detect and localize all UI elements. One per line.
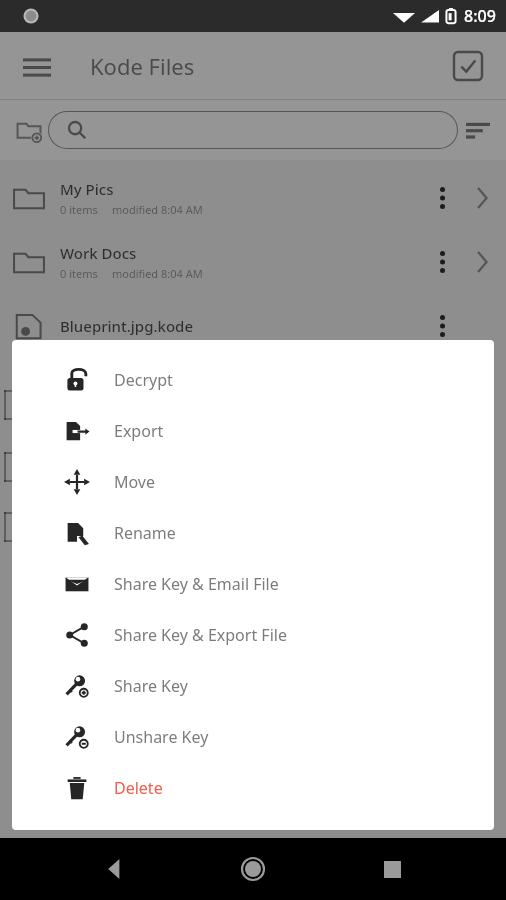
button[interactable]: New folder xyxy=(8,109,50,151)
button[interactable]: Unshare Key xyxy=(12,711,494,762)
button[interactable]: Move xyxy=(12,456,494,507)
staticText: Kode Files xyxy=(90,51,195,81)
staticText: Delete xyxy=(114,777,163,799)
button[interactable]: Share Key xyxy=(12,660,494,711)
staticText: Share Key xyxy=(114,675,188,697)
button[interactable]: Back xyxy=(91,845,139,893)
staticText: Work Docs xyxy=(60,243,137,263)
staticText: modified 8:04 AM xyxy=(112,266,203,281)
button[interactable]: Decrypt xyxy=(12,354,494,405)
staticText: Unshare Key xyxy=(114,726,209,748)
staticText: Decrypt xyxy=(114,369,173,391)
button[interactable]: Home xyxy=(229,845,277,893)
staticText: Rename xyxy=(114,522,176,544)
button[interactable]: More options xyxy=(422,178,462,218)
button[interactable] xyxy=(48,111,458,149)
button[interactable]: Rename xyxy=(12,507,494,558)
button[interactable]: More options xyxy=(422,242,462,282)
staticText: 0 items xyxy=(60,202,98,217)
button[interactable]: Export xyxy=(12,405,494,456)
button[interactable]: Work Docs xyxy=(0,230,506,294)
button[interactable]: Share Key & Email File xyxy=(12,558,494,609)
staticText: My Pics xyxy=(60,179,114,199)
staticText: Share Key & Export File xyxy=(114,624,287,646)
staticText: Export xyxy=(114,420,164,442)
button[interactable]: Recent apps xyxy=(368,845,416,893)
staticText: Move xyxy=(114,471,156,493)
staticText: 8:09 xyxy=(464,5,496,27)
staticText: Blueprint.jpg.kode xyxy=(60,316,193,336)
button[interactable]: Share Key & Export File xyxy=(12,609,494,660)
button[interactable]: Sort xyxy=(458,110,498,150)
button[interactable]: My Pics xyxy=(0,166,506,230)
button[interactable]: Blueprint.jpg.kode xyxy=(0,294,506,358)
button[interactable]: Delete xyxy=(12,762,494,813)
button[interactable]: Open navigation menu xyxy=(14,43,60,89)
staticText: modified 8:04 AM xyxy=(112,202,203,217)
button[interactable]: Select all xyxy=(446,44,490,88)
button[interactable]: More options xyxy=(422,306,462,346)
staticText: 0 items xyxy=(60,266,98,281)
staticText: Share Key & Email File xyxy=(114,573,279,595)
